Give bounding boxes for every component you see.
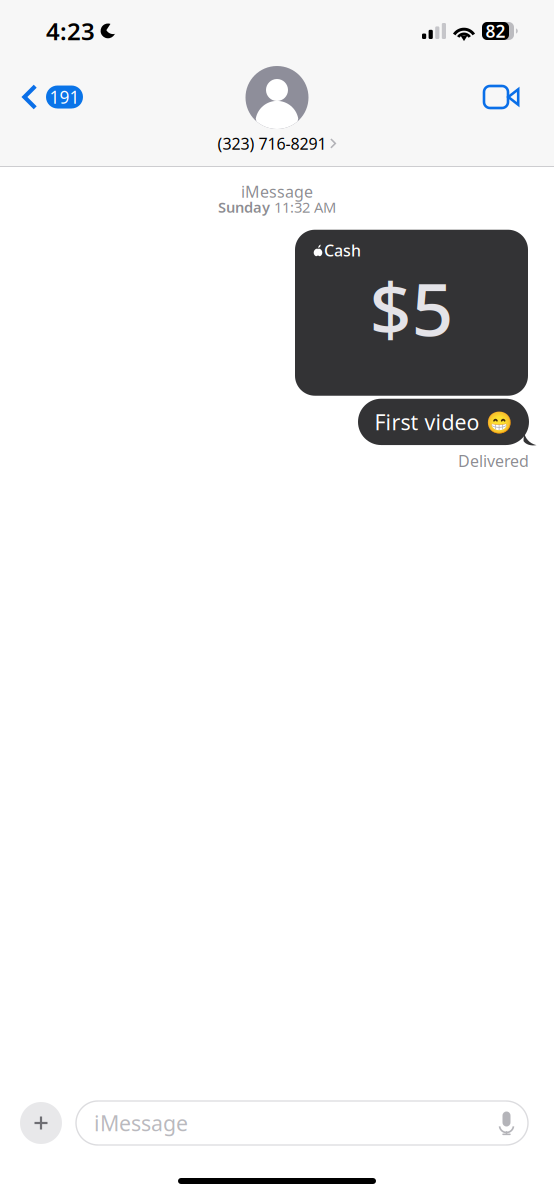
- button[interactable]: iMessage: [76, 1101, 528, 1145]
- staticText: iMessage: [241, 181, 313, 202]
- staticText: (323) 716-8291: [217, 133, 326, 154]
- button[interactable]: Back to Messages: [0, 62, 93, 134]
- button[interactable]: FaceTime: [468, 62, 554, 134]
- staticText: 191: [49, 85, 79, 108]
- staticText: Cash: [324, 240, 361, 261]
- staticText: 82: [485, 19, 505, 42]
- staticText: Delivered: [458, 450, 529, 471]
- button[interactable]: Contact info: [207, 62, 346, 160]
- staticText: First video 😁: [374, 408, 512, 436]
- staticText: 11:32 AM: [274, 197, 336, 217]
- staticText: $5: [369, 259, 453, 356]
- staticText: 4:23: [46, 15, 95, 47]
- staticText: iMessage: [94, 1109, 188, 1137]
- button[interactable]: Add attachment: [20, 1102, 62, 1144]
- staticText: Sunday: [218, 197, 270, 217]
